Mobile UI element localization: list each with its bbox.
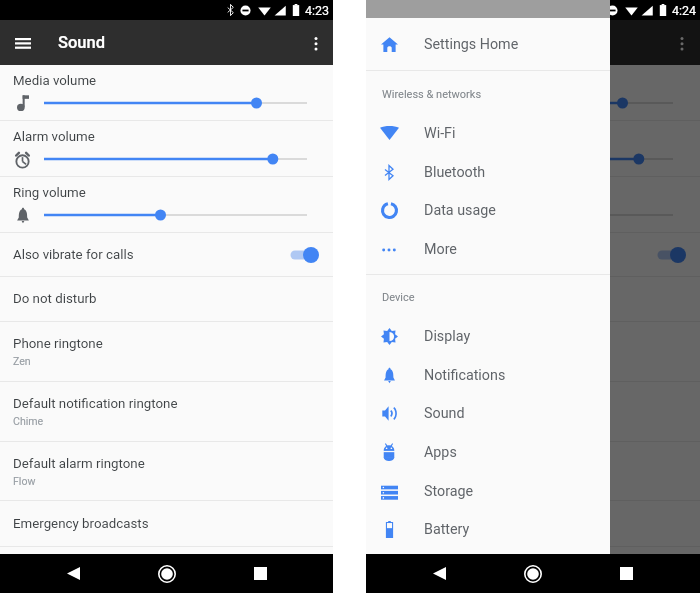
button[interactable]: More options: [666, 28, 697, 59]
button[interactable]: Default notification ringtone: [0, 382, 333, 441]
button[interactable]: Open navigation drawer: [373, 28, 404, 59]
button[interactable]: Do not disturb: [366, 277, 700, 321]
button[interactable]: Ring volume: [0, 177, 333, 232]
staticText: Storage: [424, 483, 474, 500]
staticText: More: [424, 241, 457, 258]
button[interactable]: Storage: [366, 472, 610, 511]
button[interactable]: Apps: [366, 433, 610, 472]
staticText: Media volume: [13, 73, 97, 89]
staticText: Settings Home: [424, 36, 519, 53]
button[interactable]: Battery: [366, 510, 610, 549]
button[interactable]: Back: [55, 554, 91, 593]
button[interactable]: Alarm volume: [366, 121, 700, 176]
staticText: Emergency broadcasts: [13, 516, 149, 532]
staticText: Wireless & networks: [382, 88, 482, 101]
staticText: 4:24: [672, 3, 697, 18]
button[interactable]: Also vibrate for calls: [0, 233, 333, 276]
button[interactable]: Display: [366, 317, 610, 356]
button[interactable]: Sound: [366, 394, 610, 433]
staticText: Chime: [379, 415, 410, 427]
button[interactable]: Wi-Fi: [366, 114, 610, 153]
staticText: Alarm volume: [379, 129, 461, 145]
staticText: Bluetooth: [424, 164, 486, 181]
button[interactable]: Recents: [242, 554, 278, 593]
staticText: Ring volume: [13, 185, 86, 201]
button[interactable]: Home: [515, 554, 551, 593]
button[interactable]: Do not disturb: [0, 277, 333, 321]
button[interactable]: Media volume: [366, 65, 700, 120]
button[interactable]: Emergency broadcasts: [0, 501, 333, 546]
button[interactable]: Data usage: [366, 191, 610, 230]
staticText: Emergency broadcasts: [379, 516, 515, 532]
button[interactable]: Home: [149, 554, 185, 593]
staticText: Data usage: [424, 202, 496, 219]
staticText: Chime: [13, 415, 44, 427]
button[interactable]: Recents: [608, 554, 644, 593]
staticText: Default alarm ringtone: [13, 456, 145, 472]
button[interactable]: Bluetooth: [366, 153, 610, 192]
staticText: Phone ringtone: [379, 336, 469, 352]
button[interactable]: More options: [300, 28, 331, 59]
button[interactable]: Phone ringtone: [0, 322, 333, 381]
button[interactable]: More: [366, 230, 610, 269]
button[interactable]: Alarm volume: [0, 121, 333, 176]
staticText: Battery: [424, 521, 470, 538]
staticText: Phone ringtone: [13, 336, 103, 352]
staticText: Also vibrate for calls: [13, 247, 134, 263]
staticText: Sound: [58, 33, 106, 52]
button[interactable]: Settings Home: [366, 18, 610, 70]
staticText: Default notification ringtone: [13, 396, 178, 412]
staticText: Sound: [424, 33, 472, 52]
staticText: Wi-Fi: [424, 125, 456, 142]
button[interactable]: Media volume: [0, 65, 333, 120]
staticText: Device: [382, 291, 415, 304]
staticText: Notifications: [424, 367, 506, 384]
staticText: 4:23: [305, 3, 330, 18]
button[interactable]: Also vibrate for calls: [366, 233, 700, 276]
button[interactable]: Ring volume: [366, 177, 700, 232]
button[interactable]: Emergency broadcasts: [366, 501, 700, 546]
staticText: Do not disturb: [379, 291, 463, 307]
staticText: Also vibrate for calls: [379, 247, 500, 263]
staticText: Do not disturb: [13, 291, 97, 307]
staticText: Default notification ringtone: [379, 396, 544, 412]
staticText: Display: [424, 328, 471, 345]
button[interactable]: Default alarm ringtone: [366, 442, 700, 500]
button[interactable]: Default alarm ringtone: [0, 442, 333, 500]
button[interactable]: Open navigation drawer: [7, 28, 38, 59]
staticText: Flow: [379, 475, 402, 487]
staticText: Apps: [424, 444, 457, 461]
staticText: Zen: [13, 355, 31, 367]
button[interactable]: Default notification ringtone: [366, 382, 700, 441]
staticText: Flow: [13, 475, 36, 487]
button[interactable]: Notifications: [366, 356, 610, 395]
staticText: Default alarm ringtone: [379, 456, 511, 472]
button[interactable]: Back: [421, 554, 457, 593]
staticText: Sound: [424, 405, 465, 422]
staticText: Alarm volume: [13, 129, 95, 145]
button[interactable]: Phone ringtone: [366, 322, 700, 381]
